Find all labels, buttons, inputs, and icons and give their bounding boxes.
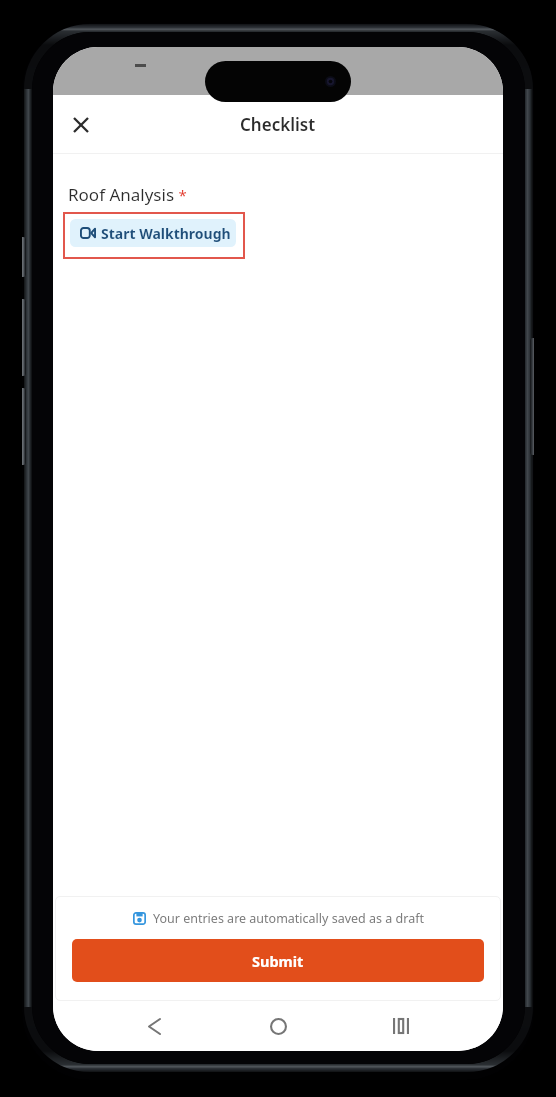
button[interactable]: Start Walkthrough <box>70 219 236 247</box>
button[interactable]: Submit <box>72 939 484 982</box>
staticText: Checklist <box>240 113 316 136</box>
staticText: Submit <box>252 951 304 971</box>
button[interactable]: Home <box>256 1004 300 1048</box>
button[interactable]: Recent apps <box>379 1004 423 1048</box>
staticText: Your entries are automatically saved as … <box>153 910 424 927</box>
staticText: Start Walkthrough <box>101 224 231 243</box>
staticText: Roof Analysis * <box>68 183 187 206</box>
button[interactable]: Close <box>59 103 103 147</box>
button[interactable]: Back <box>132 1004 176 1048</box>
